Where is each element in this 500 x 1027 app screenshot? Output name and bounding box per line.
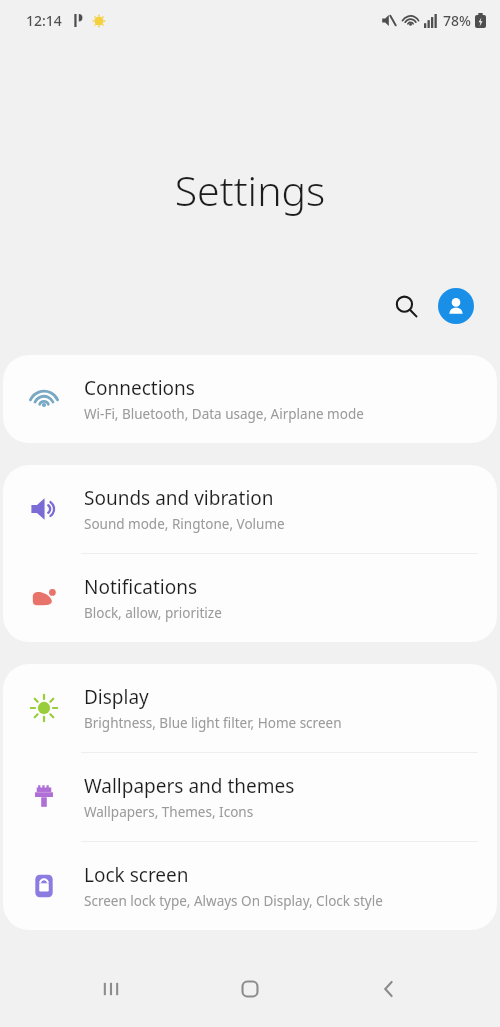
staticText: Sounds and vibration <box>84 485 274 511</box>
staticText: Wallpapers, Themes, Icons <box>84 803 254 821</box>
staticText: Sound mode, Ringtone, Volume <box>84 515 285 533</box>
button[interactable]: Recents <box>83 961 139 1017</box>
button[interactable]: Lock screen <box>3 842 497 930</box>
button[interactable]: Back <box>361 961 417 1017</box>
staticText: Connections <box>84 375 195 401</box>
staticText: Display <box>84 684 149 710</box>
button[interactable]: Wallpapers and themes <box>3 753 497 841</box>
staticText: Settings <box>0 162 500 218</box>
staticText: Notifications <box>84 574 198 600</box>
button[interactable]: Display <box>3 664 497 752</box>
button[interactable]: Search <box>384 284 428 328</box>
button[interactable]: Sounds and vibration <box>3 465 497 553</box>
staticText: Brightness, Blue light filter, Home scre… <box>84 714 342 732</box>
staticText: 12:14 <box>26 11 62 30</box>
staticText: Wi-Fi, Bluetooth, Data usage, Airplane m… <box>84 405 364 423</box>
staticText: 78% <box>443 11 471 30</box>
button[interactable]: Connections <box>3 355 497 443</box>
staticText: Lock screen <box>84 862 189 888</box>
button[interactable]: Account <box>438 288 474 324</box>
staticText: Wallpapers and themes <box>84 773 295 799</box>
button[interactable]: Notifications <box>3 554 497 642</box>
button[interactable]: Home <box>222 961 278 1017</box>
staticText: Screen lock type, Always On Display, Clo… <box>84 892 383 910</box>
staticText: Block, allow, prioritize <box>84 604 222 622</box>
